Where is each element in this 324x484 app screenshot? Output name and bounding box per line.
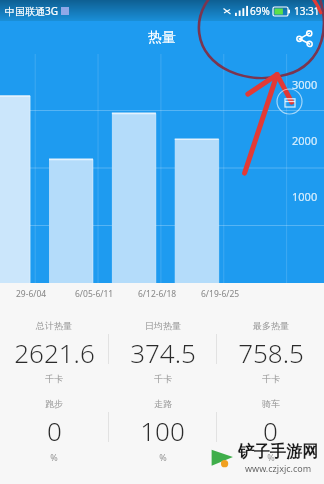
button[interactable]: 骑车 (217, 392, 324, 464)
staticText: 6/12-6/18 (138, 288, 177, 300)
button[interactable]: 最多热量 (217, 314, 324, 386)
staticText: 0 (263, 413, 278, 448)
staticText: 3000 (292, 77, 318, 92)
staticText: % (267, 451, 275, 463)
staticText: 日均热量 (145, 320, 181, 331)
staticText: 6/19-6/25 (201, 288, 240, 300)
staticText: 69% (250, 4, 270, 18)
staticText: % (50, 451, 58, 463)
staticText: 2621.6 (14, 335, 95, 370)
staticText: 0 (47, 413, 62, 448)
staticText: 千卡 (154, 373, 172, 384)
staticText: 100 (140, 413, 185, 448)
staticText: 走路 (154, 398, 172, 409)
button[interactable]: 跑步 (0, 392, 108, 464)
staticText: 千卡 (262, 373, 280, 384)
button[interactable]: 日均热量 (109, 314, 216, 386)
staticText: www.czjxjc.com (245, 462, 312, 474)
staticText: % (159, 451, 167, 463)
button[interactable]: Share (292, 26, 316, 50)
staticText: 2000 (292, 133, 318, 148)
staticText: 1000 (292, 189, 318, 204)
staticText: 中国联通3G (5, 4, 58, 18)
staticText: 13:31 (294, 4, 320, 18)
staticText: 骑车 (262, 398, 280, 409)
button[interactable]: 走路 (109, 392, 216, 464)
staticText: 铲子手游网 (238, 442, 318, 462)
button[interactable]: 总计热量 (0, 314, 108, 386)
staticText: 758.5 (238, 335, 304, 370)
staticText: 29-6/04 (16, 288, 47, 300)
staticText: 最多热量 (253, 320, 289, 331)
staticText: 千卡 (45, 373, 63, 384)
staticText: 374.5 (130, 335, 196, 370)
staticText: 跑步 (45, 398, 63, 409)
button[interactable]: Calendar (276, 88, 303, 115)
staticText: 6/05-6/11 (75, 288, 114, 300)
staticText: 热量 (148, 29, 176, 47)
staticText: 总计热量 (36, 320, 72, 331)
